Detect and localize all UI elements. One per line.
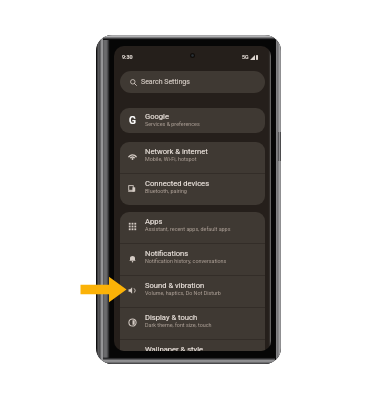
button[interactable]: Display & touch: [120, 308, 265, 339]
button[interactable]: Sound & vibration: [120, 276, 265, 307]
staticText: Notifications: [145, 249, 189, 258]
button[interactable]: G: [120, 108, 265, 133]
staticText: Network & internet: [145, 147, 208, 156]
staticText: Connected devices: [145, 179, 210, 188]
staticText: 9:30: [122, 54, 133, 60]
staticText: Search Settings: [141, 78, 190, 86]
staticText: Services & preferences: [145, 121, 200, 127]
staticText: Apps: [145, 217, 163, 226]
staticText: Wallpaper & style: [145, 345, 204, 351]
staticText: Mobile, Wi-Fi, hotspot: [145, 156, 197, 162]
button[interactable]: Network & internet: [120, 142, 265, 173]
staticText: 5G: [242, 54, 249, 60]
button[interactable]: Notifications: [120, 244, 265, 275]
staticText: Display & touch: [145, 313, 198, 322]
staticText: Volume, haptics, Do Not Disturb: [145, 290, 221, 296]
staticText: Google: [145, 112, 169, 121]
other: Pointer arrow highlighting Sound and vib…: [79, 275, 129, 304]
button[interactable]: Wallpaper & style: [120, 340, 265, 351]
button[interactable]: Apps: [120, 212, 265, 243]
staticText: Assistant, recent apps, default apps: [145, 226, 231, 232]
staticText: Bluetooth, pairing: [145, 188, 187, 194]
staticText: Sound & vibration: [145, 281, 205, 290]
button[interactable]: Connected devices: [120, 174, 265, 205]
staticText: Dark theme, font size, touch: [145, 322, 212, 328]
staticText: G: [129, 115, 136, 124]
staticText: Notification history, conversations: [145, 258, 227, 264]
button[interactable]: Search Settings: [120, 71, 265, 93]
